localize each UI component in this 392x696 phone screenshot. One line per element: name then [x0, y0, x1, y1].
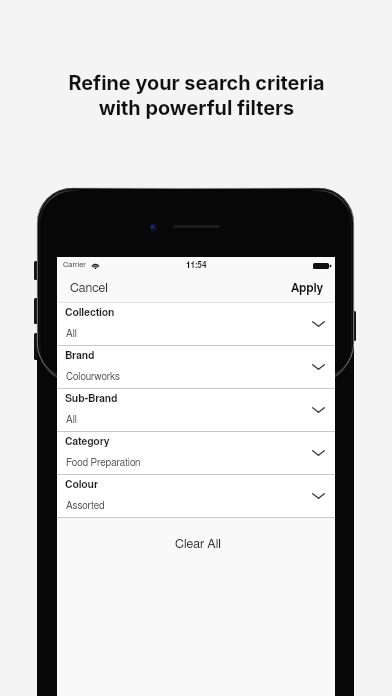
button[interactable]: Clear All [57, 518, 335, 572]
staticText: Category [65, 437, 110, 447]
button[interactable]: Collection [57, 303, 335, 346]
button[interactable]: Cancel [57, 275, 120, 301]
staticText: Assorted [66, 501, 105, 511]
other: Expand Sub-Brand [312, 407, 325, 413]
staticText: Sub-Brand [65, 394, 118, 404]
staticText: Apply [291, 282, 324, 294]
button[interactable]: Brand [57, 346, 335, 389]
staticText: Colourworks [66, 372, 121, 382]
staticText: Cancel [70, 282, 108, 295]
staticText: 11:54 [186, 261, 207, 269]
staticText: Collection [65, 308, 115, 318]
staticText: Refine your search criteria with powerfu… [68, 71, 325, 120]
staticText: Food Preparation [66, 458, 141, 468]
staticText: All [66, 415, 77, 425]
button[interactable]: Colour [57, 475, 335, 518]
staticText: All [66, 329, 77, 339]
staticText: Brand [65, 351, 95, 361]
other: Expand Collection [312, 321, 325, 327]
staticText: Colour [65, 480, 99, 490]
button[interactable]: Category [57, 432, 335, 475]
staticText: Carrier [63, 261, 86, 269]
other: Expand Colour [312, 493, 325, 499]
button[interactable]: Sub-Brand [57, 389, 335, 432]
staticText: Clear All [175, 538, 221, 551]
other: Expand Category [312, 450, 325, 456]
button[interactable]: Apply [279, 275, 335, 301]
other: Expand Brand [312, 364, 325, 370]
